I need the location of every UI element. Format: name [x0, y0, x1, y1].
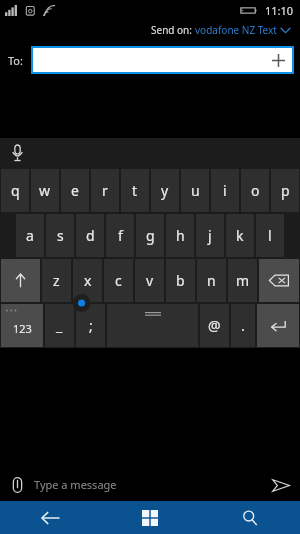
button[interactable]: o	[241, 169, 269, 212]
button[interactable]: Enter	[257, 304, 299, 347]
staticText: z	[53, 271, 60, 290]
staticText: k	[236, 226, 244, 245]
staticText: x	[84, 271, 92, 290]
staticText: e	[71, 181, 79, 200]
button[interactable]: b	[166, 259, 195, 302]
button[interactable]: s	[46, 214, 74, 257]
button[interactable]: a	[16, 214, 44, 257]
staticText: f	[118, 226, 123, 245]
staticText: n	[207, 271, 216, 290]
button[interactable]: Add recipient	[31, 46, 294, 74]
staticText: t	[132, 181, 138, 200]
staticText: d	[86, 226, 95, 245]
button[interactable]: Send	[268, 472, 294, 498]
staticText: r	[102, 181, 108, 200]
staticText: l	[268, 226, 272, 245]
staticText: ;	[89, 316, 93, 335]
staticText: .	[241, 316, 245, 335]
staticText: _	[56, 316, 63, 335]
staticText: vodafone NZ Text	[195, 23, 277, 37]
button[interactable]: y	[151, 169, 179, 212]
button[interactable]: @	[200, 304, 229, 347]
staticText: To:	[8, 53, 23, 68]
button[interactable]: Dictate	[6, 142, 28, 164]
button[interactable]: w	[31, 169, 59, 212]
button[interactable]: x	[73, 259, 102, 302]
button[interactable]: n	[197, 259, 226, 302]
button[interactable]: h	[166, 214, 194, 257]
button[interactable]: i	[211, 169, 239, 212]
staticText: q	[11, 181, 20, 200]
button[interactable]: m	[228, 259, 257, 302]
staticText: u	[191, 181, 200, 200]
staticText: b	[176, 271, 185, 290]
staticText: a	[26, 226, 34, 245]
button[interactable]: u	[181, 169, 209, 212]
button[interactable]: ;	[76, 304, 105, 347]
staticText: j	[208, 226, 212, 245]
staticText: c	[115, 271, 122, 290]
button[interactable]: v	[135, 259, 164, 302]
staticText: s	[57, 226, 64, 245]
button[interactable]: t	[121, 169, 149, 212]
button[interactable]: c	[104, 259, 133, 302]
button[interactable]: Start	[100, 501, 200, 534]
button[interactable]: .	[231, 304, 255, 347]
button[interactable]: g	[136, 214, 164, 257]
button[interactable]: Backspace	[259, 259, 299, 302]
button[interactable]: Space	[107, 304, 198, 347]
staticText: 123	[13, 321, 32, 336]
staticText: 11:10	[265, 3, 294, 18]
staticText: h	[176, 226, 185, 245]
staticText: g	[146, 226, 155, 245]
button[interactable]: q	[1, 169, 29, 212]
button[interactable]: Send on:	[149, 21, 292, 39]
staticText: y	[161, 181, 169, 200]
button[interactable]: j	[196, 214, 224, 257]
button[interactable]: Attach	[6, 474, 28, 496]
staticText: @	[208, 316, 221, 335]
button[interactable]: k	[226, 214, 254, 257]
button[interactable]: f	[106, 214, 134, 257]
staticText: v	[146, 271, 154, 290]
button[interactable]: Type a message	[34, 468, 268, 501]
staticText: i	[223, 181, 227, 200]
button[interactable]: Back	[0, 501, 100, 534]
staticText: p	[281, 181, 290, 200]
button[interactable]: p	[271, 169, 299, 212]
button[interactable]: _	[45, 304, 74, 347]
button[interactable]: e	[61, 169, 89, 212]
button[interactable]: r	[91, 169, 119, 212]
button[interactable]: Shift	[1, 259, 40, 302]
staticText: o	[251, 181, 260, 200]
button[interactable]: z	[42, 259, 71, 302]
button[interactable]: l	[256, 214, 284, 257]
other: Add recipient	[270, 52, 286, 68]
staticText: Send on:	[151, 23, 195, 37]
staticText: w	[39, 181, 51, 200]
staticText: m	[236, 271, 250, 290]
button[interactable]: d	[76, 214, 104, 257]
button[interactable]: 123	[1, 304, 43, 347]
staticText: Type a message	[34, 477, 117, 492]
button[interactable]: Search	[200, 501, 300, 534]
